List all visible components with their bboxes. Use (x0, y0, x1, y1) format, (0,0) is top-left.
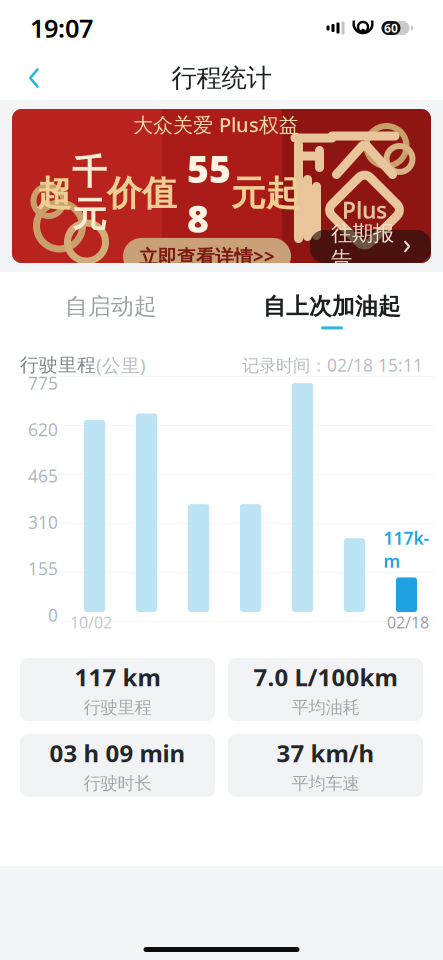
staticText: 310 (28, 511, 58, 534)
button[interactable]: Plus (12, 109, 431, 263)
staticText: 02/18 (387, 612, 429, 633)
staticText: 行驶里程 (20, 353, 96, 376)
staticText: 775 (28, 371, 58, 394)
staticText: 立即查看详情>> (139, 244, 275, 269)
staticText: (公里) (96, 353, 146, 377)
button[interactable]: 自上次加油起 (221, 280, 442, 342)
staticText: 117km (383, 526, 429, 572)
staticText: 大众关爱 Plus权益 (133, 111, 299, 138)
staticText: 往期报告 (331, 220, 394, 273)
staticText: 记录时间：02/18 15:11 (242, 353, 423, 376)
staticText: Plus (342, 195, 387, 225)
staticText: 155 (28, 557, 58, 580)
staticText: 行驶里程 (83, 697, 151, 718)
staticText: 558 (187, 144, 231, 243)
staticText: 千元 (72, 151, 107, 236)
staticText: 平均油耗 (291, 697, 359, 718)
button[interactable]: 往期报告 (310, 230, 431, 263)
staticText: 0 (48, 603, 58, 626)
button[interactable]: 自启动起 (0, 280, 221, 342)
button[interactable]: 返回 (12, 56, 56, 100)
staticText: 自上次加油起 (263, 293, 401, 320)
staticText: 平均车速 (291, 773, 359, 794)
staticText: 行程统计 (171, 62, 271, 93)
staticText: 自启动起 (65, 293, 157, 320)
staticText: 620 (28, 418, 58, 441)
staticText: 7.0 L/100km (253, 661, 397, 693)
staticText: 10/02 (70, 612, 112, 633)
staticText: 03 h 09 min (49, 737, 185, 769)
staticText: 19:07 (30, 11, 93, 45)
staticText: 465 (28, 464, 58, 487)
staticText: 价值 (107, 172, 187, 215)
staticText: 60 (384, 20, 398, 36)
staticText: 元起 (231, 172, 301, 215)
staticText: 117 km (74, 661, 160, 693)
staticText: 37 km/h (276, 737, 374, 769)
staticText: 超 (37, 172, 72, 215)
staticText: 行驶时长 (83, 773, 151, 794)
